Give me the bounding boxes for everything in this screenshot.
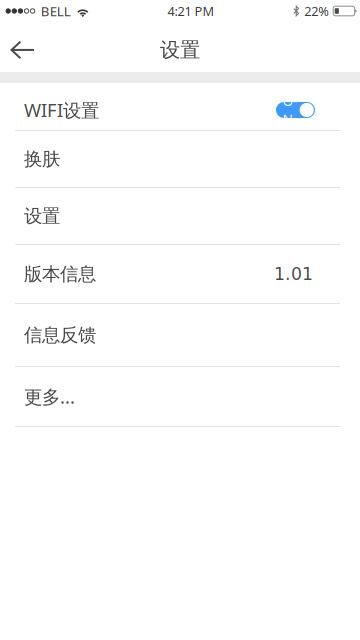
button[interactable]: Back — [0, 20, 49, 74]
button[interactable]: 版本信息 — [0, 245, 360, 304]
staticText: 设置 — [160, 37, 200, 63]
staticText: 4:21 PM — [167, 2, 214, 20]
staticText: 22% — [304, 2, 329, 20]
button[interactable]: WIFI设置 — [0, 83, 360, 131]
staticText: 版本信息 — [24, 262, 96, 286]
staticText: BELL — [41, 2, 71, 20]
button[interactable]: 换肤 — [0, 131, 360, 188]
staticText: WIFI设置 — [24, 97, 99, 122]
button[interactable]: 信息反馈 — [0, 304, 360, 367]
staticText: ON — [282, 91, 297, 129]
button[interactable]: 设置 — [0, 188, 360, 245]
staticText: 设置 — [24, 204, 60, 228]
staticText: 1.01 — [274, 264, 313, 284]
staticText: 更多... — [24, 384, 75, 409]
staticText: 信息反馈 — [24, 323, 96, 347]
button[interactable]: 更多... — [0, 367, 360, 427]
staticText: 换肤 — [24, 147, 60, 171]
